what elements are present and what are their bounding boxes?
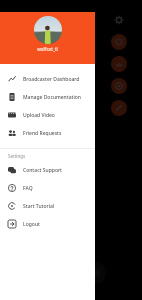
button[interactable]: Contact Support bbox=[0, 161, 95, 179]
staticText: Start Tutorial bbox=[23, 203, 55, 210]
staticText: FAQ bbox=[23, 185, 33, 192]
button[interactable]: Friend Requests bbox=[0, 124, 95, 142]
staticText: Upload Video bbox=[23, 112, 55, 119]
button[interactable]: Draw bbox=[111, 100, 127, 116]
button[interactable]: Record bbox=[84, 262, 106, 284]
button[interactable]: Manage Documentation bbox=[0, 88, 95, 106]
button[interactable]: Effects bbox=[111, 34, 127, 50]
button[interactable]: Camera bbox=[111, 78, 127, 94]
button[interactable]: Upload Video bbox=[0, 106, 95, 124]
button[interactable]: Logout bbox=[0, 215, 95, 233]
staticText: Contact Support bbox=[23, 167, 62, 174]
staticText: Broadcaster Dashboard bbox=[23, 76, 80, 83]
button[interactable]: Broadcast bbox=[111, 56, 127, 72]
staticText: Logout bbox=[23, 221, 40, 228]
button[interactable]: Profile photo bbox=[0, 12, 95, 64]
button[interactable]: FAQ bbox=[0, 179, 95, 197]
staticText: Manage Documentation bbox=[23, 94, 81, 101]
button[interactable]: Profile photo bbox=[34, 16, 62, 44]
button[interactable]: Settings bbox=[111, 12, 127, 28]
staticText: Friend Requests bbox=[23, 130, 62, 137]
button[interactable]: Start Tutorial bbox=[0, 197, 95, 215]
staticText: Settings bbox=[8, 153, 26, 159]
staticText: wolfcat_tl bbox=[0, 46, 95, 52]
button[interactable]: Broadcaster Dashboard bbox=[0, 70, 95, 88]
